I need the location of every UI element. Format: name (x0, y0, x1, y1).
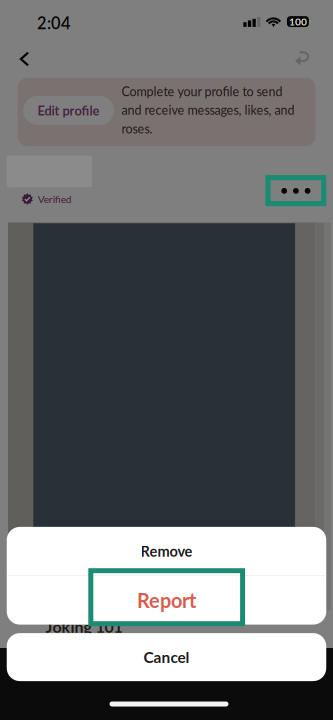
staticText: 100 (289, 15, 307, 28)
staticText: Cancel (143, 648, 189, 666)
staticText: 2:04 (37, 13, 71, 33)
button[interactable]: Cancel (7, 633, 326, 681)
button[interactable]: More options (268, 177, 324, 205)
staticText: Edit profile (38, 103, 100, 118)
button[interactable]: Report (7, 576, 326, 625)
staticText: Remove (140, 542, 192, 560)
staticText: Complete your profile to send and receiv… (121, 84, 294, 136)
button[interactable]: Rewind (281, 37, 321, 77)
staticText: Report (137, 588, 196, 612)
staticText: Verified (38, 193, 72, 205)
staticText: Joking 101 (45, 617, 122, 636)
button[interactable]: Edit profile (23, 96, 114, 125)
button[interactable]: Back (2, 39, 46, 79)
button[interactable]: Remove (7, 527, 326, 575)
